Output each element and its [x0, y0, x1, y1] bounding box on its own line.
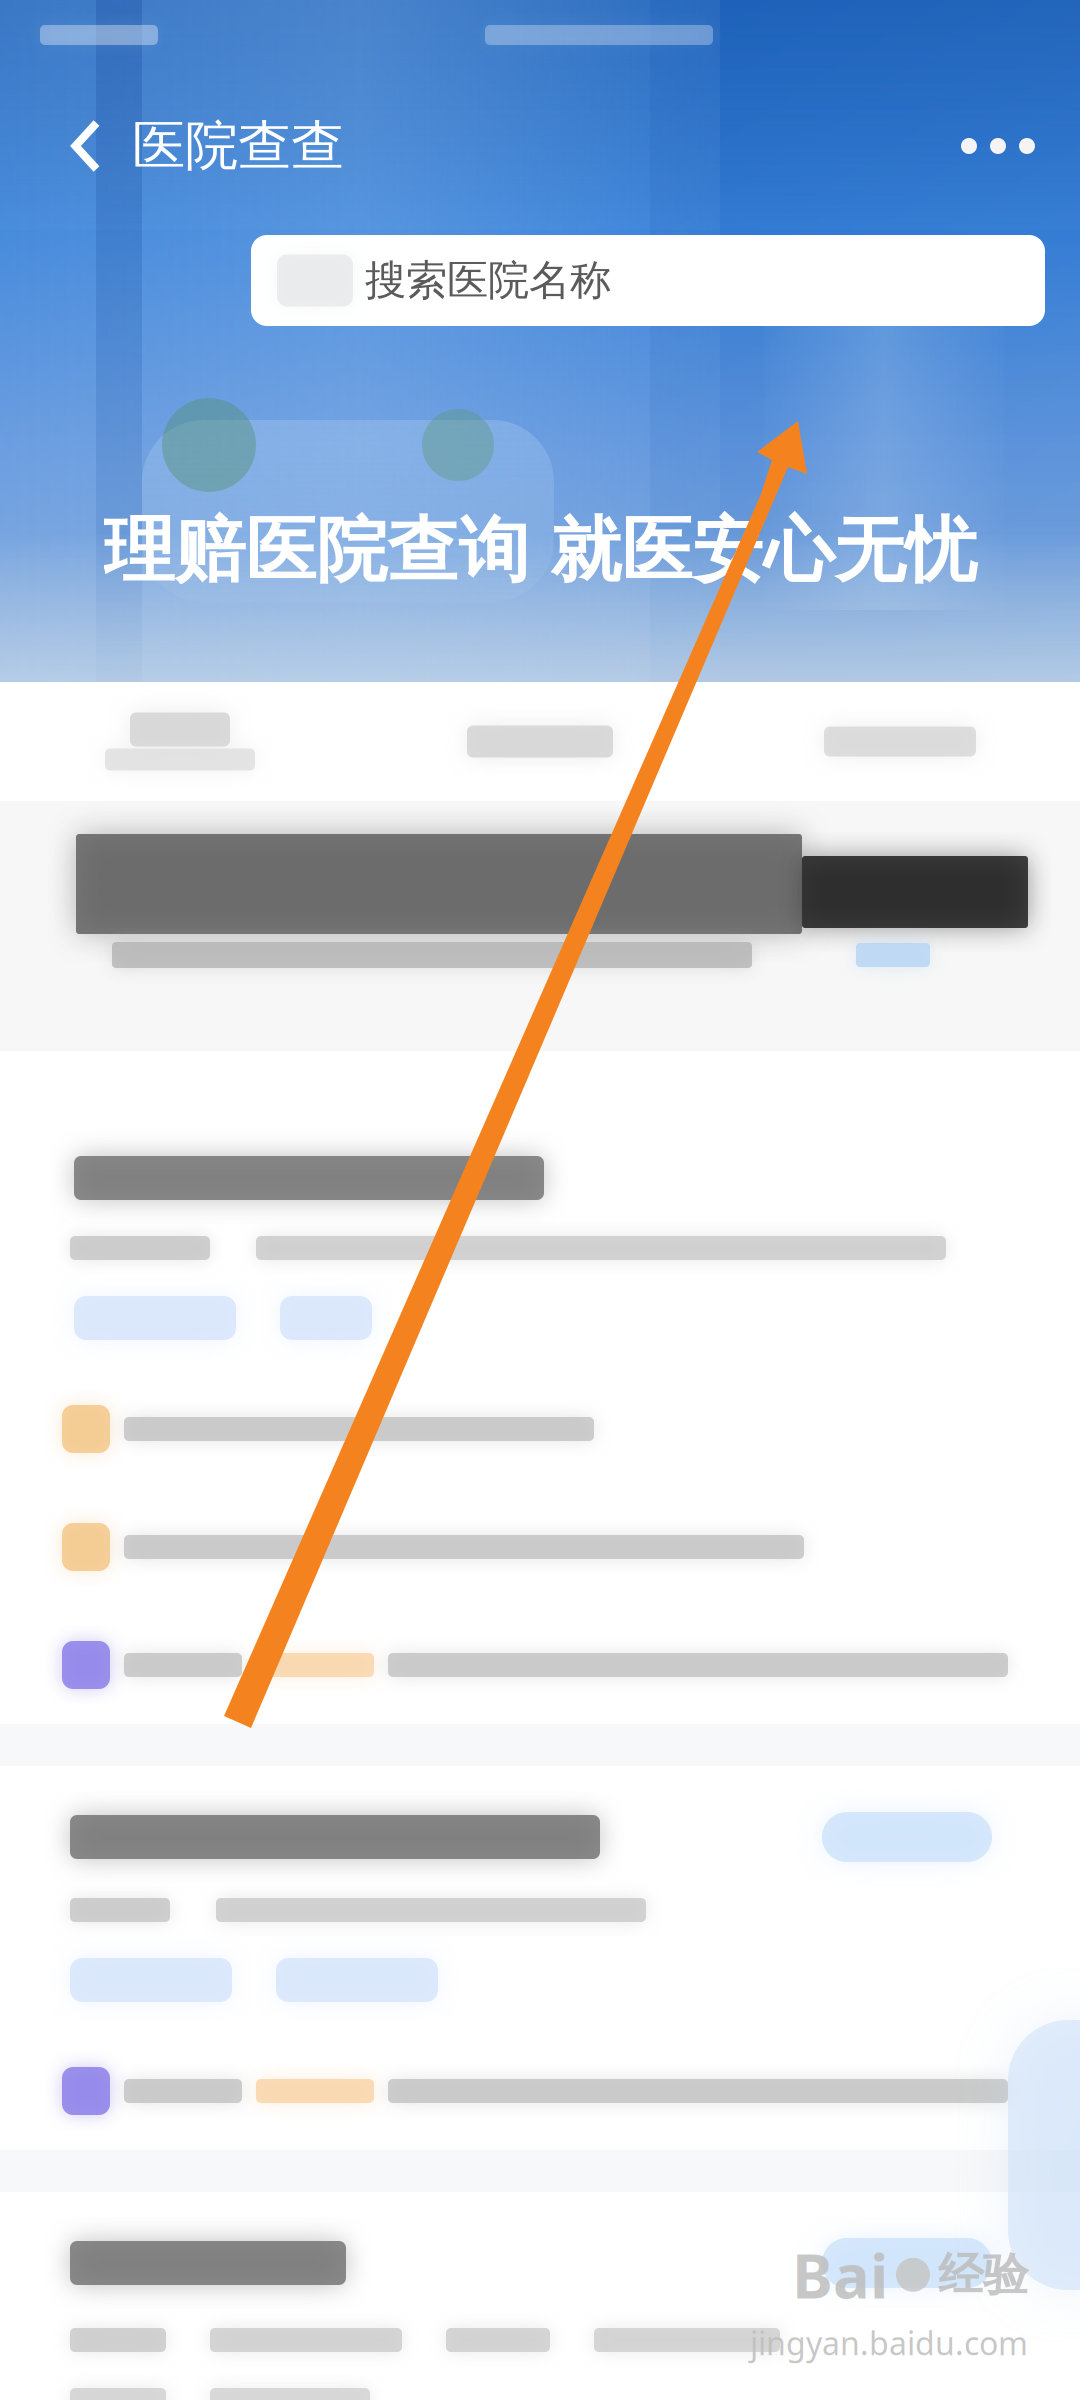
button[interactable]	[0, 682, 360, 801]
button[interactable]	[0, 1606, 1080, 1724]
button[interactable]	[720, 682, 1080, 801]
button[interactable]: More	[946, 100, 1050, 192]
button[interactable]: 搜索医院名称	[251, 235, 1045, 326]
button[interactable]	[0, 2192, 1080, 2400]
staticText: 理赔医院查询 就医安心无忧	[103, 507, 976, 594]
staticText: 搜索医院名称	[365, 255, 611, 306]
staticText: 经验	[938, 2247, 1028, 2303]
button[interactable]	[0, 2032, 1080, 2150]
button[interactable]: Back	[40, 100, 132, 192]
button[interactable]	[0, 1488, 1080, 1606]
staticText: 医院查查	[132, 113, 344, 179]
button[interactable]	[0, 1766, 1080, 2032]
staticText: jingyan.baidu.com	[750, 2321, 1028, 2364]
button[interactable]	[0, 1051, 1080, 1370]
button[interactable]	[0, 1370, 1080, 1488]
staticText: Bai	[792, 2234, 888, 2315]
button[interactable]	[360, 682, 720, 801]
